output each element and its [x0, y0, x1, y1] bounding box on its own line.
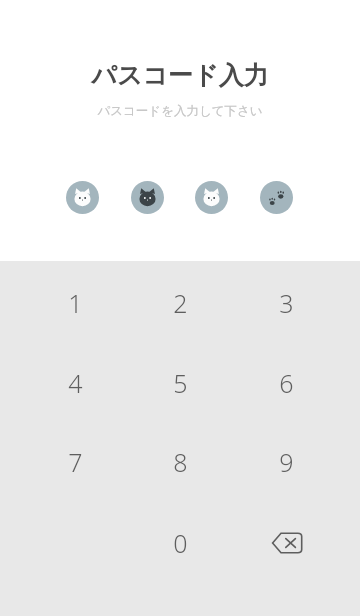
other: Passcode digit 1 empty	[66, 181, 99, 214]
staticText: パスコードを入力して下さい	[0, 103, 360, 119]
other: Passcode digit 2 filled	[131, 181, 164, 214]
button[interactable]: 6	[234, 348, 339, 418]
button[interactable]: 0	[128, 508, 233, 578]
button[interactable]: 9	[234, 427, 339, 497]
button[interactable]: 8	[128, 427, 233, 497]
staticText: 6	[279, 366, 294, 400]
staticText: 1	[68, 286, 83, 320]
button[interactable]: 2	[128, 268, 233, 338]
staticText: 4	[68, 366, 83, 400]
staticText: パスコード入力	[0, 60, 360, 91]
staticText: 3	[279, 286, 294, 320]
staticText: 9	[279, 445, 294, 479]
button[interactable]: 1	[23, 268, 128, 338]
staticText: 5	[173, 366, 188, 400]
staticText: 0	[173, 526, 188, 560]
staticText: 8	[173, 445, 188, 479]
button[interactable]: 7	[23, 427, 128, 497]
staticText: 2	[173, 286, 188, 320]
button[interactable]: Delete	[234, 508, 339, 578]
other: Passcode digit 4	[260, 181, 293, 214]
button[interactable]: 4	[23, 348, 128, 418]
button[interactable]: 5	[128, 348, 233, 418]
other: Passcode digit 3 empty	[195, 181, 228, 214]
button[interactable]: 3	[234, 268, 339, 338]
staticText: 7	[68, 445, 83, 479]
